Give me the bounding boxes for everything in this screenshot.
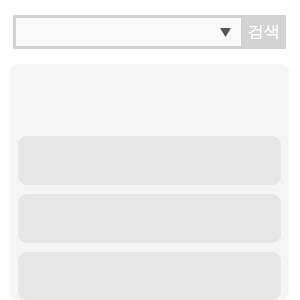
button[interactable]: 검색 [244,15,286,49]
button[interactable]: Select search category [16,18,241,46]
staticText: 검색 [248,22,280,42]
